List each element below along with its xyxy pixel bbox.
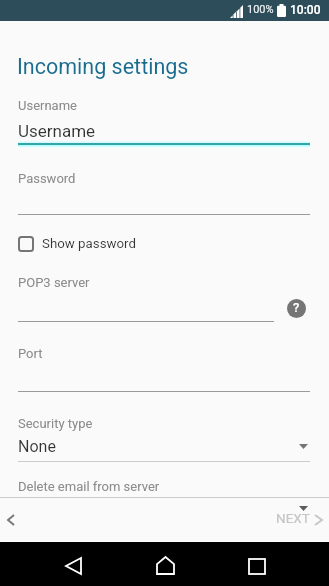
button[interactable]: None bbox=[0, 433, 329, 459]
staticText: ? bbox=[293, 300, 300, 315]
button[interactable]: Back bbox=[42, 542, 104, 586]
staticText: Security type bbox=[18, 416, 93, 431]
staticText: Delete email from server bbox=[18, 479, 160, 494]
staticText: 10:00 bbox=[290, 3, 321, 17]
staticText: Username bbox=[18, 98, 77, 113]
button[interactable]: Help bbox=[287, 299, 306, 318]
staticText: Username bbox=[18, 121, 96, 141]
button[interactable]: Show password bbox=[0, 232, 329, 256]
staticText: Incoming settings bbox=[17, 54, 189, 79]
staticText: None bbox=[18, 437, 56, 456]
staticText: Port bbox=[18, 346, 43, 361]
button[interactable]: Home bbox=[134, 542, 196, 586]
staticText: 100% bbox=[247, 3, 274, 16]
button[interactable]: Previous bbox=[0, 498, 52, 541]
button[interactable]: Recents bbox=[226, 542, 288, 586]
staticText: Show password bbox=[42, 236, 136, 252]
staticText: POP3 server bbox=[18, 275, 90, 290]
staticText: NEXT bbox=[276, 510, 310, 526]
staticText: Password bbox=[18, 171, 76, 186]
button[interactable]: NEXT bbox=[269, 498, 329, 541]
